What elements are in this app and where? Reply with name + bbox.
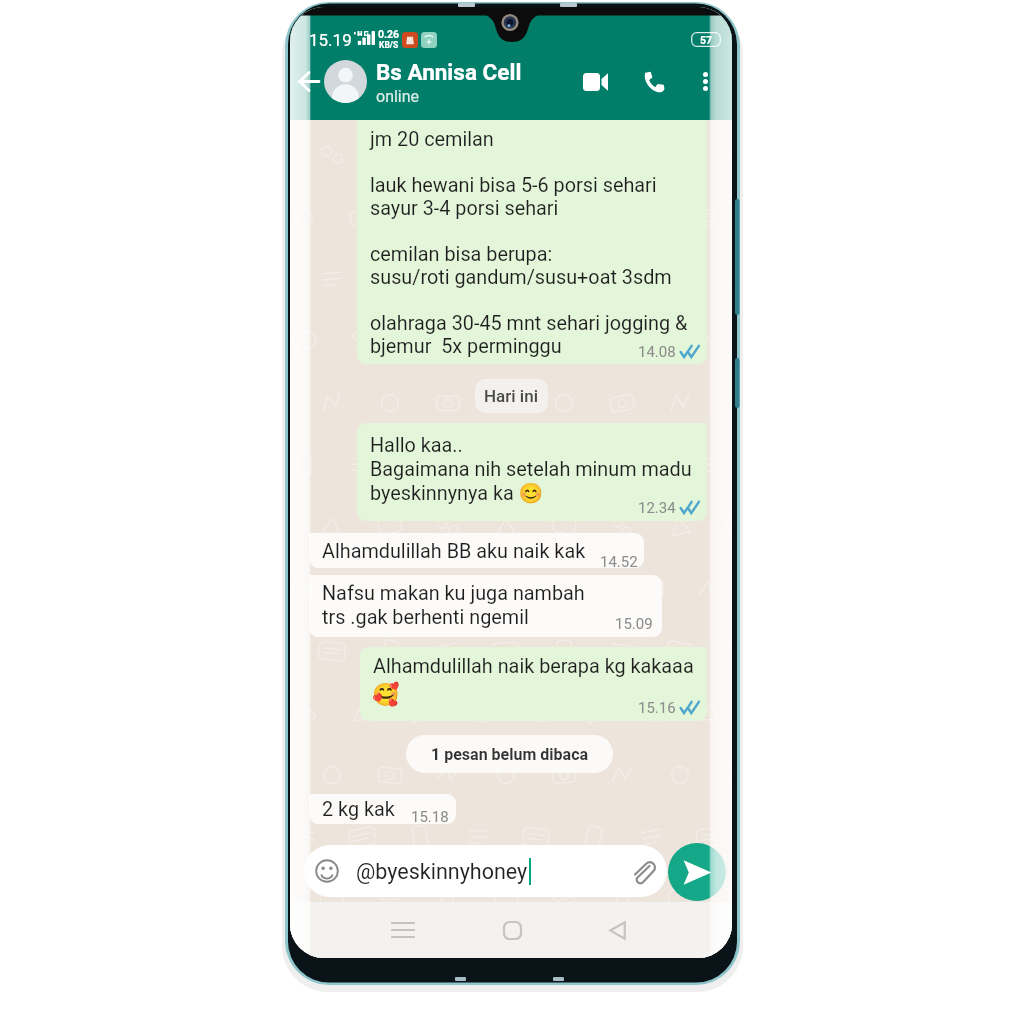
staticText: 15.16 [638,699,676,717]
staticText: 15.18 [411,808,449,824]
button[interactable]: jm 20 cemilan lauk hewani bisa 5-6 porsi… [357,107,707,364]
button[interactable]: Hallo kaa.. Bagaimana nih setelah minum … [357,423,707,521]
staticText: 14.08 [638,343,676,361]
button[interactable]: Alhamdulillah BB aku naik kak [309,533,644,568]
staticText: jm 20 cemilan lauk hewani bisa 5-6 porsi… [370,128,688,358]
button[interactable]: Alhamdulillah naik berapa kg kakaaa [360,647,707,721]
staticText: 12.34 [638,499,676,517]
button[interactable]: Recent apps [379,907,427,953]
staticText: Bs Annisa Cell [376,59,522,85]
staticText: 57 [700,34,713,46]
staticText: KB/S [379,40,399,50]
staticText: Hallo kaa.. Bagaimana nih setelah minum … [370,434,692,505]
button[interactable]: Profile photo [324,60,367,103]
button[interactable]: Home [488,907,536,953]
staticText: @byeskinnyhoney [356,859,528,884]
button[interactable]: 2 kg kak [309,794,456,824]
staticText: 0.26 [378,28,400,40]
button[interactable]: More options [691,63,719,100]
staticText: 14.52 [600,553,638,568]
staticText: 15.19 [309,30,352,50]
staticText: Alhamdulillah naik berapa kg kakaaa [373,655,694,678]
staticText: online [376,87,420,106]
button[interactable]: Hari ini [475,379,548,413]
staticText: 🥰 [372,682,400,708]
staticText: Nafsu makan ku juga nambah trs .gak berh… [322,582,585,629]
button[interactable]: Video call [577,64,613,100]
button[interactable]: Call [635,63,672,100]
staticText: Hari ini [484,386,539,406]
button[interactable]: 1 pesan belum dibaca [406,735,613,773]
staticText: 2 kg kak [322,798,395,821]
staticText: Alhamdulillah BB aku naik kak [322,540,586,563]
staticText: 15.09 [615,615,653,633]
button[interactable]: Nafsu makan ku juga nambah trs .gak berh… [309,575,662,637]
staticText: 1 pesan belum dibaca [431,745,589,764]
button[interactable]: Back [593,907,641,953]
other: Attach file [630,859,655,884]
button[interactable]: @byeskinnyhoney [304,845,667,897]
button[interactable]: Send [668,843,726,901]
button[interactable]: Back [290,63,327,100]
